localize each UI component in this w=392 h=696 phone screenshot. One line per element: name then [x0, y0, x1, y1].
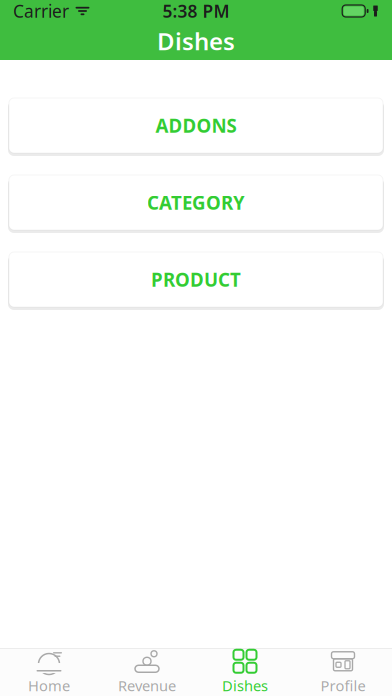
staticText: PRODUCT [151, 267, 241, 292]
staticText: Dishes [157, 25, 235, 57]
staticText: Revenue [118, 676, 176, 695]
staticText: Profile [320, 676, 365, 695]
staticText: ADDONS [155, 113, 236, 138]
button[interactable]: Profile [294, 649, 392, 696]
staticText: CATEGORY [147, 190, 245, 215]
button[interactable]: PRODUCT [0, 252, 392, 310]
button[interactable]: ADDONS [0, 98, 392, 156]
staticText: Carrier [13, 0, 69, 22]
button[interactable]: CATEGORY [0, 175, 392, 233]
button[interactable]: Home [0, 649, 98, 696]
staticText: Home [28, 676, 70, 695]
staticText: 5:38 PM [162, 0, 229, 22]
staticText: Dishes [222, 676, 268, 695]
button[interactable]: Revenue [98, 649, 196, 696]
button[interactable]: Dishes [196, 649, 294, 696]
